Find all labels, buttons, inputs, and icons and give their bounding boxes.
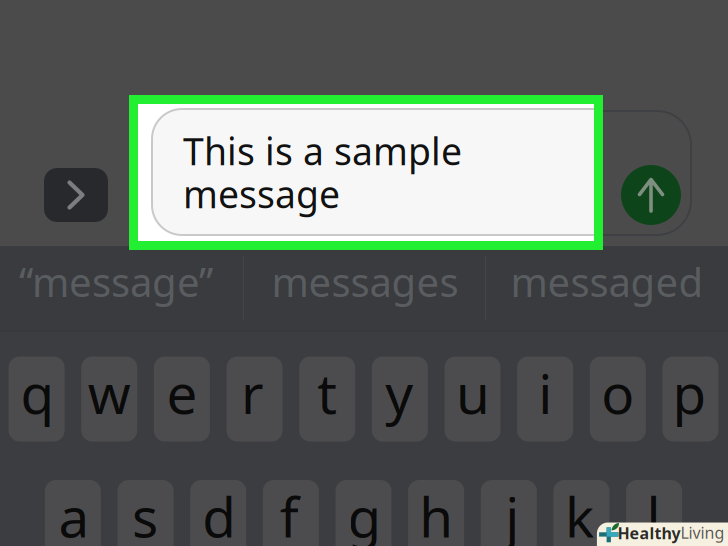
button[interactable]: f [263, 480, 319, 546]
button[interactable]: l [626, 480, 682, 546]
button[interactable]: u [444, 356, 500, 441]
staticText: p [672, 356, 706, 429]
staticText: Living [681, 522, 725, 543]
staticText: o [601, 356, 634, 429]
button[interactable]: y [372, 356, 428, 441]
staticText: g [347, 480, 381, 546]
staticText: i [538, 356, 552, 429]
staticText: w [88, 356, 131, 429]
staticText: r [241, 356, 264, 429]
staticText: q [21, 356, 55, 429]
staticText: e [166, 356, 197, 429]
staticText: k [565, 480, 594, 546]
staticText: l [647, 480, 661, 546]
staticText: messaged [510, 255, 703, 308]
button[interactable]: t [299, 356, 355, 441]
staticText: y [385, 356, 413, 429]
button[interactable]: Send [621, 165, 681, 225]
button[interactable]: messages [243, 246, 485, 331]
button[interactable]: e [154, 356, 210, 441]
button[interactable]: w [81, 356, 137, 441]
staticText: messages [271, 255, 458, 308]
staticText: a [58, 480, 89, 546]
button[interactable]: messaged [485, 246, 728, 331]
staticText: s [132, 480, 158, 546]
button[interactable]: g [335, 480, 391, 546]
staticText: j [505, 480, 519, 546]
button[interactable]: i [517, 356, 573, 441]
staticText: “message” [19, 255, 213, 308]
button[interactable]: a [45, 480, 101, 546]
button[interactable]: o [590, 356, 646, 441]
staticText: t [317, 356, 337, 429]
button[interactable]: r [227, 356, 283, 441]
staticText: Healthy [618, 522, 681, 544]
staticText: d [202, 480, 236, 546]
staticText: u [456, 356, 490, 429]
staticText: h [419, 480, 453, 546]
staticText: message [183, 169, 340, 219]
button[interactable]: “message” [0, 246, 243, 331]
button[interactable]: h [408, 480, 464, 546]
button[interactable]: s [118, 480, 174, 546]
staticText: This is a sample [183, 126, 462, 176]
button[interactable]: p [662, 356, 718, 441]
staticText: f [280, 480, 299, 546]
button[interactable]: k [553, 480, 609, 546]
button[interactable]: d [190, 480, 246, 546]
button[interactable]: j [481, 480, 537, 546]
button[interactable]: q [9, 356, 65, 441]
button[interactable]: Show more apps [44, 168, 108, 222]
